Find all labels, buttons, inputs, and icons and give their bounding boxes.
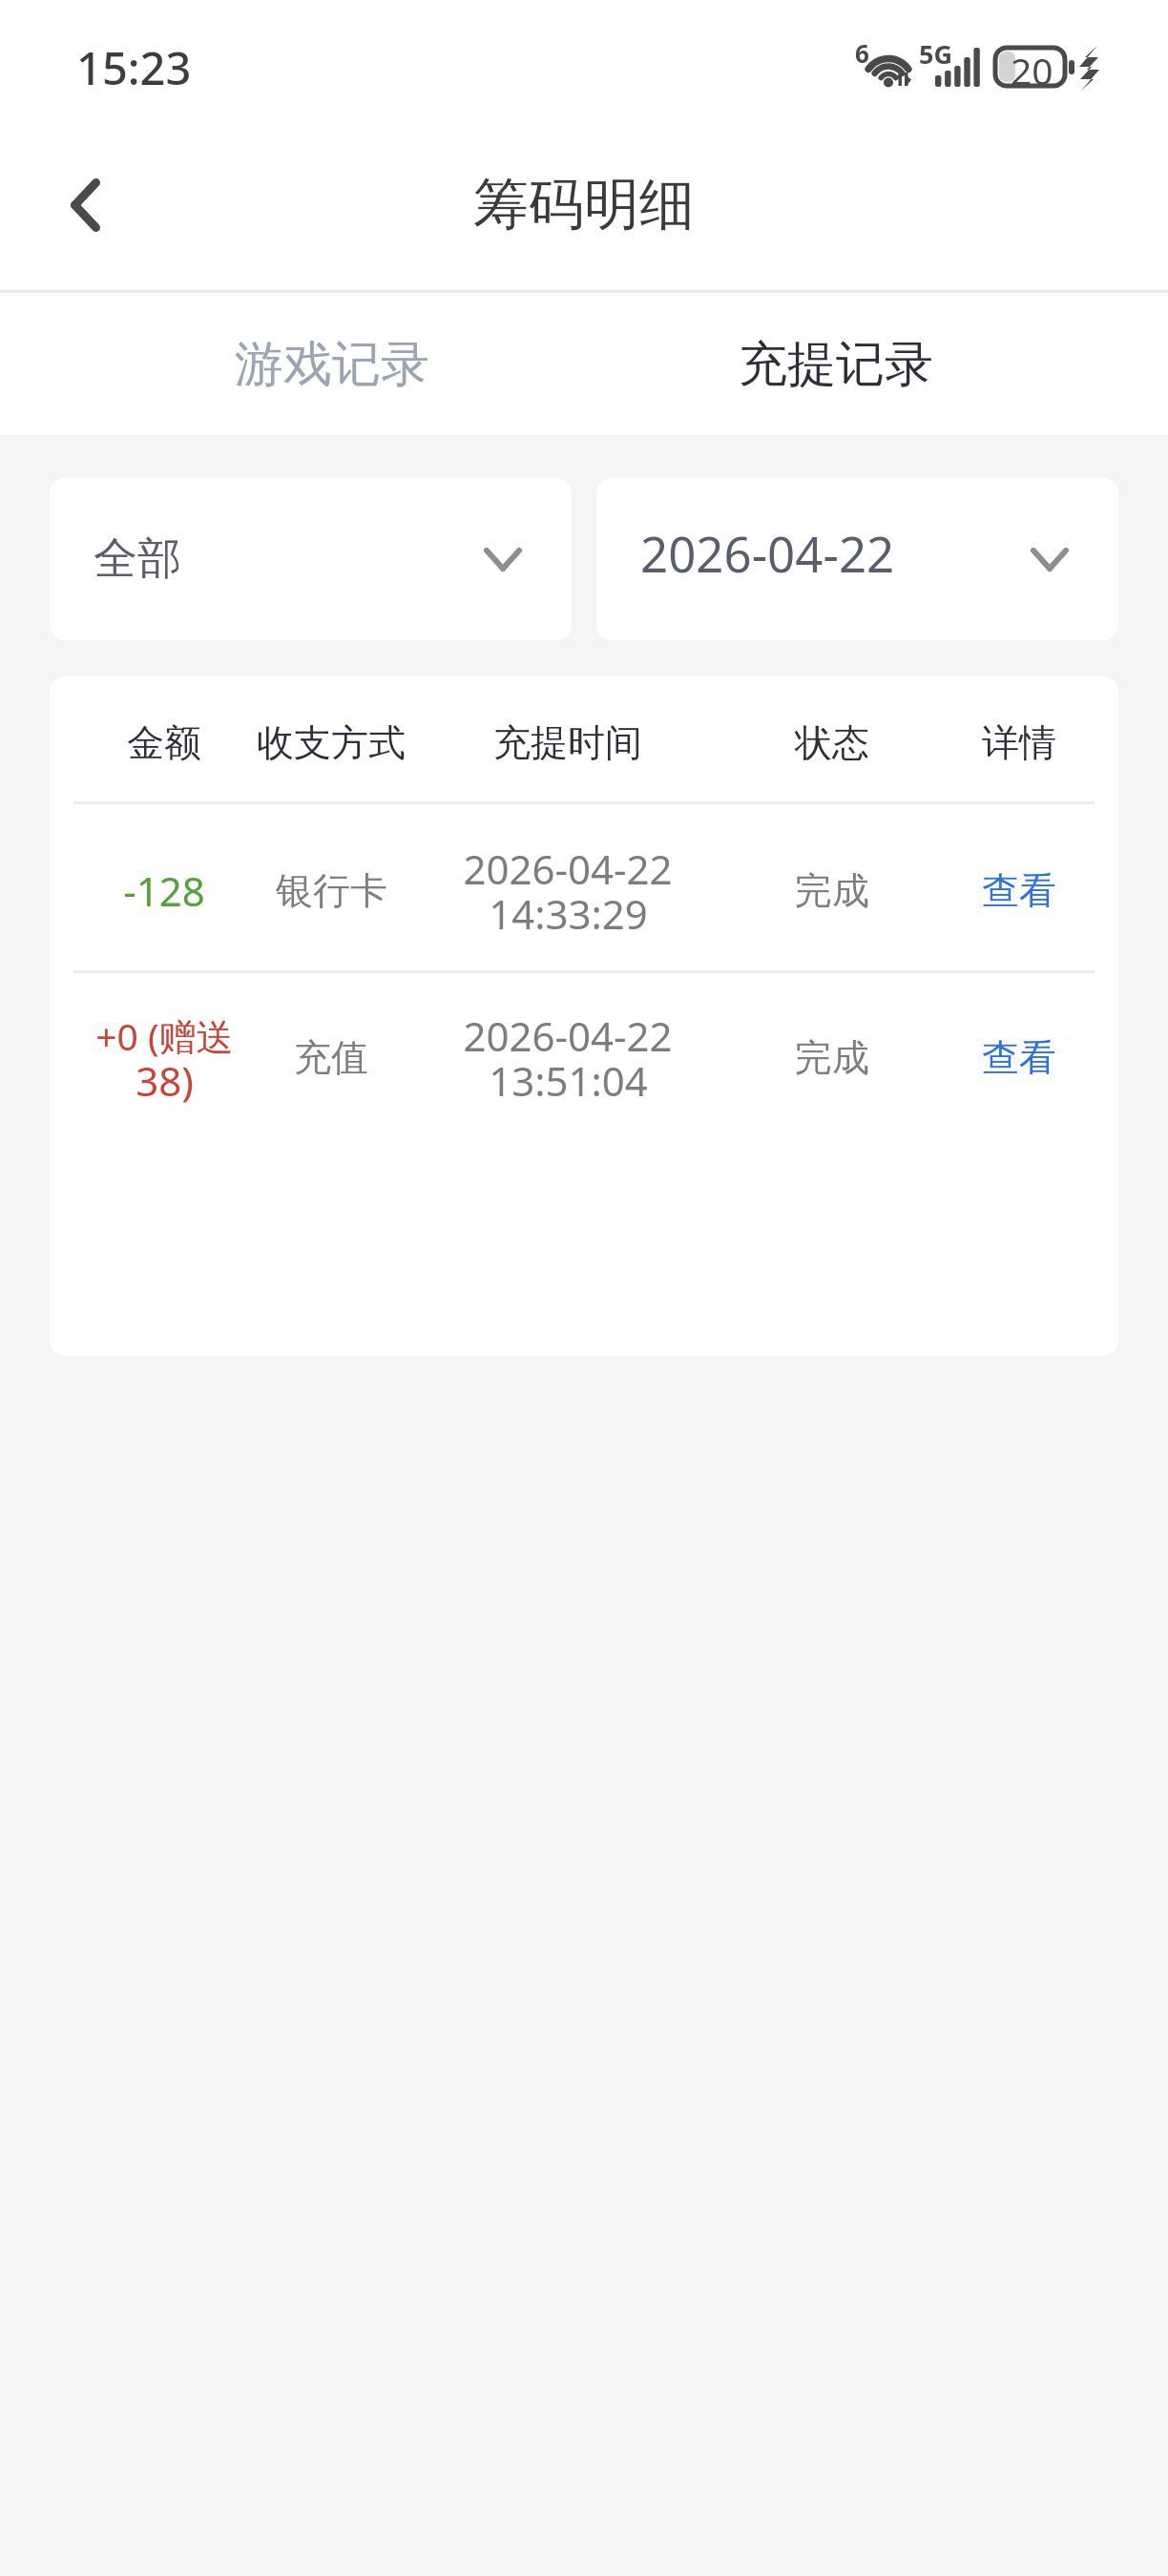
staticText: 5G <box>919 36 952 72</box>
button[interactable]: 全部 <box>50 478 572 640</box>
staticText: 38) <box>136 1053 194 1108</box>
staticText: -128 <box>123 863 205 918</box>
staticText: 筹码明细 <box>473 170 695 239</box>
button[interactable]: Back <box>35 156 135 255</box>
staticText: 详情 <box>982 719 1056 766</box>
staticText: 收支方式 <box>257 719 406 766</box>
staticText: 2026-04-22 <box>640 520 895 586</box>
staticText: 查看 <box>982 1034 1056 1081</box>
button[interactable]: 2026-04-22 <box>596 478 1118 640</box>
staticText: 游戏记录 <box>235 334 429 395</box>
staticText: 15:23 <box>76 37 192 98</box>
staticText: 2026-04-22 <box>463 1008 673 1063</box>
button[interactable]: 充提记录 <box>584 293 1168 435</box>
staticText: 充提时间 <box>493 719 642 766</box>
staticText: 金额 <box>127 719 201 766</box>
staticText: 银行卡 <box>276 867 387 914</box>
staticText: 13:51:04 <box>489 1053 648 1108</box>
staticText: 全部 <box>94 531 181 587</box>
button[interactable]: 查看详情 <box>943 839 1095 944</box>
staticText: 充提记录 <box>739 334 933 395</box>
staticText: 完成 <box>795 867 869 914</box>
staticText: 2026-04-22 <box>463 841 673 896</box>
staticText: 状态 <box>795 719 869 766</box>
staticText: 20 <box>1011 45 1053 95</box>
staticText: 6 <box>855 36 869 70</box>
button[interactable]: 查看详情 <box>943 1006 1095 1111</box>
staticText: +0 (赠送 <box>95 1010 234 1061</box>
button[interactable]: 游戏记录 <box>0 293 584 435</box>
staticText: 充值 <box>294 1034 368 1081</box>
staticText: 完成 <box>795 1034 869 1081</box>
staticText: 查看 <box>982 867 1056 914</box>
staticText: 14:33:29 <box>489 886 648 941</box>
